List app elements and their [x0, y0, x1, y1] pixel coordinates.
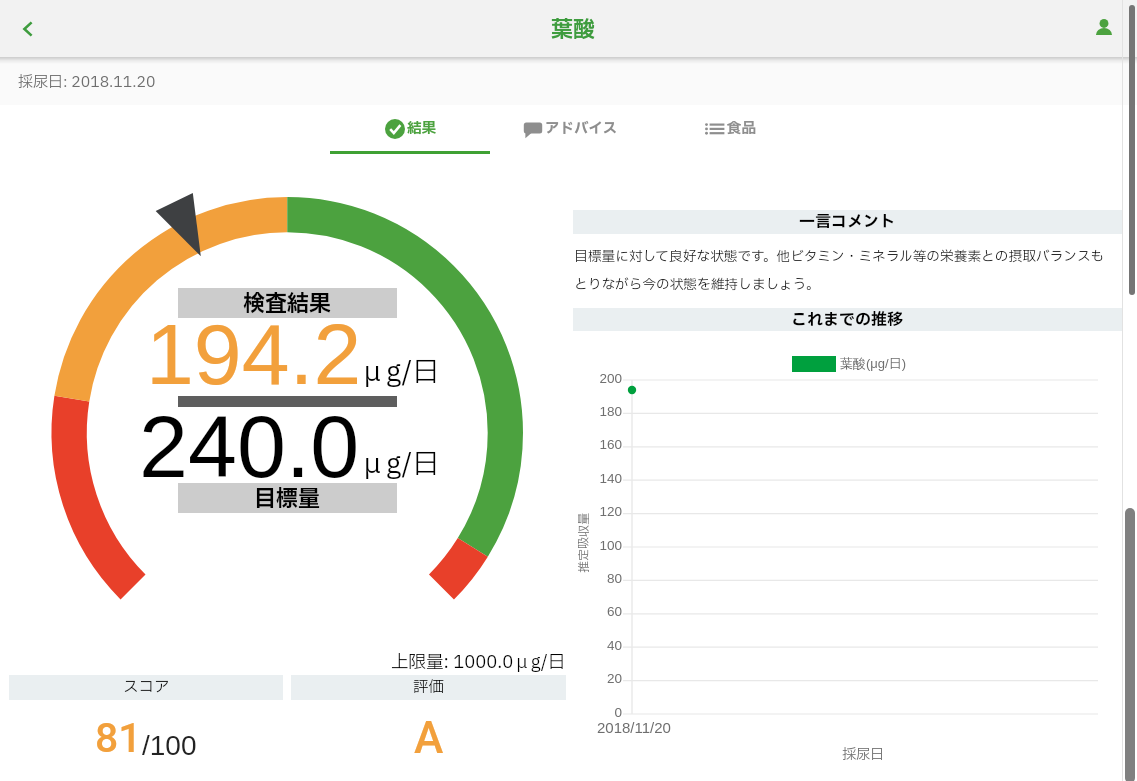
staticText: 100: [575, 538, 622, 553]
staticText: 検査結果: [243, 288, 332, 318]
staticText: 評価: [413, 676, 445, 699]
staticText: 2018/11/20: [597, 719, 671, 736]
staticText: これまでの推移: [791, 308, 904, 331]
staticText: 葉酸: [551, 14, 596, 47]
button[interactable]: Account: [1080, 4, 1128, 52]
staticText: 194.2: [146, 306, 362, 402]
staticText: 採尿日: [842, 744, 884, 765]
button[interactable]: Back: [0, 1, 56, 57]
staticText: A: [414, 712, 444, 764]
button[interactable]: 結果: [330, 105, 490, 154]
staticText: 60: [575, 604, 622, 619]
staticText: 採尿日: 2018.11.20: [18, 71, 156, 93]
staticText: 上限量: 1000.0μg/日: [391, 649, 566, 675]
staticText: 240.0: [139, 397, 360, 495]
staticText: 120: [575, 504, 622, 519]
staticText: アドバイス: [545, 118, 618, 140]
staticText: 食品: [727, 118, 756, 140]
staticText: 160: [575, 437, 622, 452]
staticText: 目標量に対して良好な状態です。他ビタミン・ミネラル等の栄養素との摂取バランスもと…: [574, 246, 1112, 295]
staticText: 40: [575, 638, 622, 653]
staticText: 180: [575, 404, 622, 419]
staticText: スコア: [123, 676, 170, 699]
staticText: 推定吸収量: [575, 503, 593, 583]
staticText: 一言コメント: [799, 210, 896, 234]
staticText: 140: [575, 471, 622, 486]
button[interactable]: アドバイス: [490, 105, 650, 154]
staticText: 0: [575, 705, 622, 720]
staticText: /100: [142, 730, 197, 761]
staticText: 20: [575, 671, 622, 686]
staticText: 葉酸(μg/日): [840, 355, 906, 371]
staticText: 200: [575, 371, 622, 386]
staticText: 結果: [407, 118, 436, 140]
staticText: 80: [575, 571, 622, 586]
staticText: μg/日: [359, 352, 440, 392]
staticText: 目標量: [254, 483, 321, 513]
staticText: μg/日: [359, 444, 440, 484]
staticText: 81: [95, 714, 142, 762]
button[interactable]: 食品: [650, 105, 810, 154]
